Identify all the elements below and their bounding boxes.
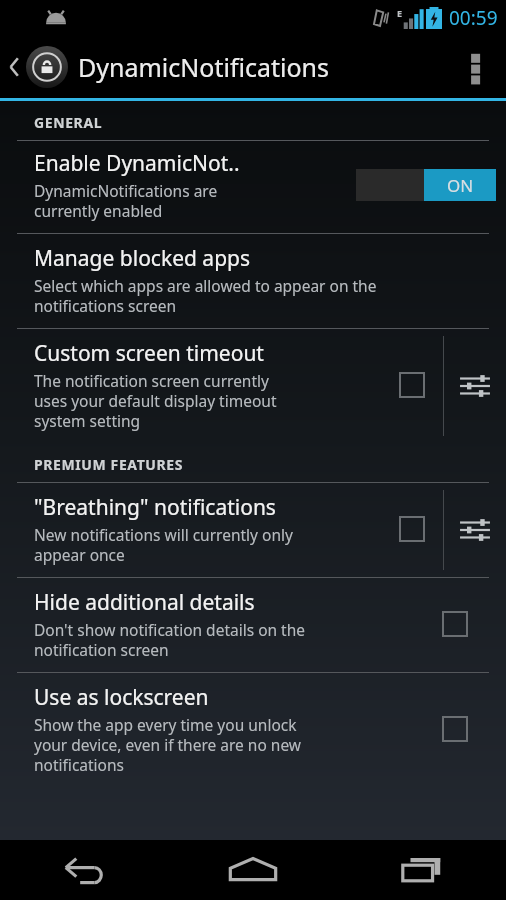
staticText: PREMIUM FEATURES (34, 455, 184, 474)
button[interactable]: Use as lockscreen (0, 673, 506, 787)
button[interactable]: Custom screen timeout (0, 329, 443, 443)
staticText: DynamicNotifications (78, 50, 330, 84)
button[interactable]: Hide additional details (0, 578, 506, 672)
button[interactable]: Back (0, 840, 168, 900)
button[interactable]: Navigate up (0, 40, 336, 94)
staticText: Show the app every time you unlock your … (34, 714, 302, 775)
staticText: Don't show notification details on the n… (34, 619, 306, 660)
button[interactable]: Recent apps (337, 840, 506, 900)
button[interactable]: Breathing notification settings (444, 490, 506, 570)
button[interactable]: Home (168, 840, 337, 900)
button[interactable]: "Breathing" notifications (0, 483, 443, 577)
staticText: The notification screen currently uses y… (34, 370, 277, 431)
staticText: E (397, 7, 403, 19)
staticText: 00:59 (449, 5, 498, 31)
staticText: New notifications will currently only ap… (34, 524, 293, 565)
button[interactable]: More options (445, 36, 506, 98)
staticText: ON (447, 174, 474, 197)
staticText: Hide additional details (34, 588, 255, 617)
button[interactable]: Manage blocked apps (0, 234, 506, 328)
staticText: Enable DynamicNot.. (34, 149, 240, 178)
staticText: DynamicNotifications are currently enabl… (34, 180, 218, 221)
staticText: Custom screen timeout (34, 339, 264, 368)
button[interactable]: Custom screen timeout settings (444, 336, 506, 436)
staticText: GENERAL (34, 113, 103, 132)
button[interactable]: Enable DynamicNot.. (0, 141, 506, 233)
staticText: Select which apps are allowed to appear … (34, 275, 377, 316)
staticText: Manage blocked apps (34, 244, 251, 273)
staticText: Use as lockscreen (34, 683, 209, 712)
staticText: "Breathing" notifications (34, 493, 276, 522)
button[interactable]: Enable DynamicNotifications (356, 169, 496, 201)
